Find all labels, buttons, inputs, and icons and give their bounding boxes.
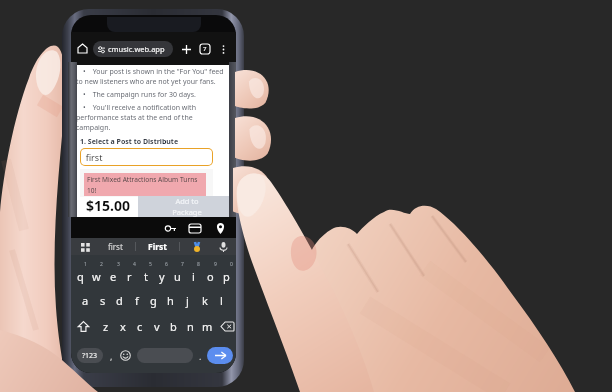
staticText: $15.00 [86, 196, 130, 215]
staticText: • The campaign runs for 30 days. [76, 90, 228, 100]
staticText: 5 [149, 261, 152, 268]
staticText: ?123 [82, 351, 98, 361]
staticText: 9 [214, 261, 217, 268]
staticText: 2 [100, 261, 103, 268]
staticText: m [202, 319, 213, 334]
staticText: q [77, 269, 84, 284]
staticText: 8 [197, 261, 200, 268]
staticText: r [127, 269, 132, 284]
staticText: 4 [133, 261, 136, 268]
staticText: first [81, 151, 103, 163]
staticText: y [159, 269, 165, 284]
button[interactable]: 3 [106, 261, 121, 287]
button[interactable]: b [165, 313, 182, 340]
staticText: h [167, 293, 174, 308]
staticText: 7 [203, 45, 207, 53]
staticText: s [100, 293, 106, 308]
staticText: j [186, 293, 189, 308]
button[interactable]: 0 [219, 261, 234, 287]
button[interactable]: Stickers [191, 241, 202, 252]
staticText: a [82, 293, 89, 308]
button[interactable]: n [182, 313, 199, 340]
button[interactable]: Add to Package [138, 196, 236, 217]
button[interactable]: Passwords [163, 221, 177, 235]
button[interactable]: cmusic.web.app [93, 41, 173, 57]
button[interactable]: 8 [186, 261, 201, 287]
button[interactable]: l [213, 287, 230, 313]
staticText: , [110, 350, 113, 362]
button[interactable]: 2 [89, 261, 104, 287]
button[interactable]: 4 [122, 261, 137, 287]
staticText: 7 [181, 261, 184, 268]
button[interactable]: Home [75, 41, 90, 56]
button[interactable]: v [148, 313, 165, 340]
staticText: 3 [117, 261, 120, 268]
staticText: f [135, 293, 139, 308]
staticText: d [116, 293, 123, 308]
button[interactable]: f [128, 287, 145, 313]
button[interactable]: Backspace [219, 313, 236, 340]
staticText: 6 [165, 261, 168, 268]
staticText: 1 [84, 261, 87, 268]
staticText: l [220, 293, 223, 308]
button[interactable]: Addresses [213, 221, 227, 235]
button[interactable]: first [81, 149, 212, 165]
button[interactable]: Voice input [217, 241, 229, 253]
button[interactable]: Space [137, 348, 193, 363]
button[interactable]: ?123 [77, 348, 103, 363]
button[interactable]: h [162, 287, 179, 313]
button[interactable]: c [131, 313, 148, 340]
button[interactable]: Emoji [119, 349, 132, 362]
staticText: n [187, 319, 194, 334]
staticText: • Your post is shown in the "For You" fe… [76, 67, 228, 87]
staticText: w [92, 269, 101, 284]
button[interactable]: z [97, 313, 114, 340]
staticText: k [202, 293, 208, 308]
button[interactable]: 6 [154, 261, 169, 287]
button[interactable]: k [196, 287, 213, 313]
staticText: c [137, 319, 143, 334]
button[interactable]: Shift [74, 313, 92, 340]
button[interactable]: Open tabs [197, 41, 213, 57]
staticText: . [199, 350, 202, 362]
staticText: g [150, 293, 157, 308]
button[interactable]: x [114, 313, 131, 340]
staticText: v [154, 319, 160, 334]
button[interactable]: j [179, 287, 196, 313]
button[interactable]: Payment methods [188, 221, 202, 235]
button[interactable]: d [111, 287, 128, 313]
button[interactable]: Keyboard menu [79, 241, 91, 253]
button[interactable]: 5 [138, 261, 153, 287]
staticText: • You'll receive a notification with per… [76, 103, 228, 133]
staticText: i [192, 269, 195, 284]
button[interactable]: m [199, 313, 216, 340]
button[interactable]: Enter [207, 347, 233, 364]
staticText: t [144, 269, 148, 284]
staticText: cmusic.web.app [108, 44, 165, 54]
staticText: 1. Select a Post to Distribute [80, 137, 179, 147]
staticText: First [148, 241, 167, 253]
staticText: u [174, 269, 181, 284]
staticText: p [223, 269, 230, 284]
staticText: z [103, 319, 109, 334]
staticText: 0 [230, 261, 233, 268]
button[interactable]: g [145, 287, 162, 313]
staticText: e [110, 269, 117, 284]
button[interactable]: 9 [203, 261, 218, 287]
staticText: x [120, 319, 126, 334]
staticText: first [108, 241, 123, 252]
button[interactable]: First Mixed Attractions Album Turns 10! [87, 173, 203, 196]
staticText: o [207, 269, 214, 284]
staticText: b [170, 319, 177, 334]
button[interactable]: More options [216, 42, 230, 56]
staticText: Add to Package [172, 196, 202, 217]
button[interactable]: s [94, 287, 111, 313]
button[interactable]: 7 [170, 261, 185, 287]
staticText: First Mixed Attractions Album Turns 10! [87, 175, 203, 195]
button[interactable]: New tab [178, 41, 194, 57]
button[interactable]: 1 [73, 261, 88, 287]
button[interactable]: a [77, 287, 94, 313]
